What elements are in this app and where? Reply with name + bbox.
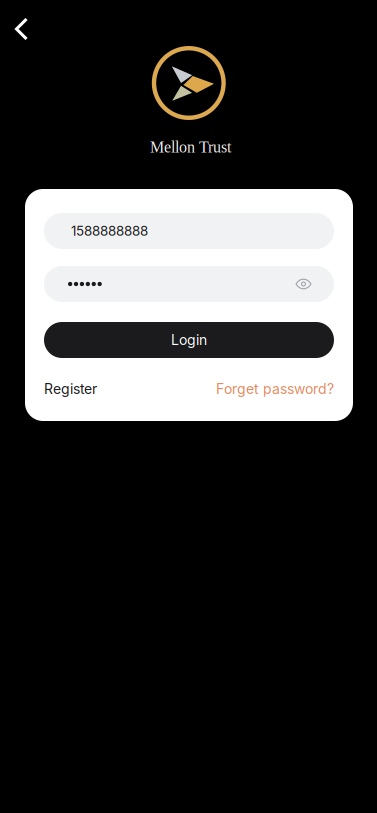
staticText: Mellon Trust bbox=[150, 138, 231, 156]
staticText: Login bbox=[171, 331, 207, 348]
staticText: 1588888888 bbox=[71, 223, 148, 239]
button[interactable]: Login bbox=[44, 322, 334, 358]
button[interactable]: Show password bbox=[295, 277, 312, 290]
staticText: Forget password? bbox=[216, 380, 334, 397]
button[interactable]: Forget password? bbox=[216, 380, 334, 397]
staticText: Register bbox=[44, 380, 97, 397]
button[interactable]: Register bbox=[44, 380, 97, 397]
button[interactable]: Back bbox=[1, 9, 41, 49]
